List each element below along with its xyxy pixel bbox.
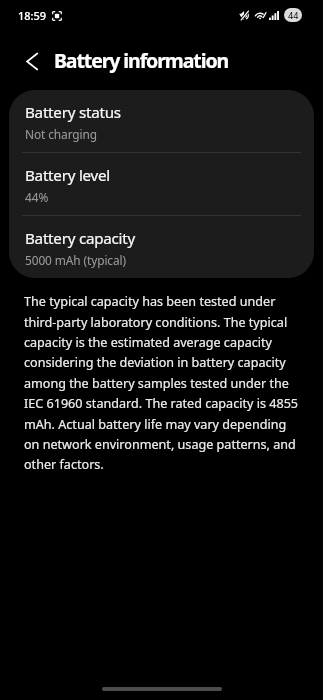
staticText: IEC 61960 standard. The rated capacity i… <box>24 395 299 412</box>
staticText: 5000 mAh (typical) <box>25 252 126 268</box>
staticText: considering the deviation in battery cap… <box>24 354 286 371</box>
staticText: The typical capacity has been tested und… <box>24 293 276 310</box>
button[interactable]: Battery capacity <box>9 216 314 278</box>
staticText: third-party laboratory conditions. The t… <box>24 314 288 331</box>
button[interactable]: Battery level <box>9 153 314 215</box>
staticText: 44% <box>25 189 49 205</box>
staticText: 18:59 <box>18 8 47 23</box>
staticText: 44 <box>288 9 299 21</box>
staticText: Battery capacity <box>25 228 135 249</box>
staticText: other factors. <box>24 456 104 473</box>
button[interactable]: Battery status <box>9 90 314 152</box>
staticText: Battery level <box>25 165 111 186</box>
staticText: among the battery samples tested under t… <box>24 375 289 392</box>
staticText: mAh. Actual battery life may vary depend… <box>24 416 287 433</box>
staticText: on network environment, usage patterns, … <box>24 436 296 453</box>
staticText: Battery status <box>25 102 121 123</box>
staticText: capacity is the estimated average capaci… <box>24 334 273 351</box>
staticText: Not charging <box>25 126 97 142</box>
staticText: Battery information <box>54 47 229 74</box>
button[interactable]: Back <box>15 45 47 77</box>
